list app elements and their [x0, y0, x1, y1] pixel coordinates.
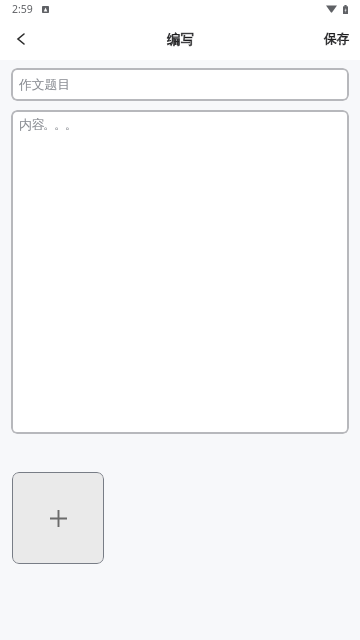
staticText: 编写	[167, 31, 194, 48]
button[interactable]: 保存	[313, 21, 360, 57]
staticText: 内容	[19, 117, 45, 133]
button[interactable]: Back	[0, 18, 42, 60]
staticText: 保存	[324, 31, 349, 47]
staticText: 2:59	[12, 2, 33, 16]
button[interactable]: 作文题目	[11, 68, 349, 101]
staticText: 作文题目	[19, 77, 71, 93]
staticText: 编写	[167, 31, 194, 48]
staticText: 保存	[324, 31, 349, 47]
button[interactable]: 内容	[11, 110, 349, 434]
staticText: 。。。	[43, 117, 76, 133]
button[interactable]: Add image	[12, 472, 104, 564]
